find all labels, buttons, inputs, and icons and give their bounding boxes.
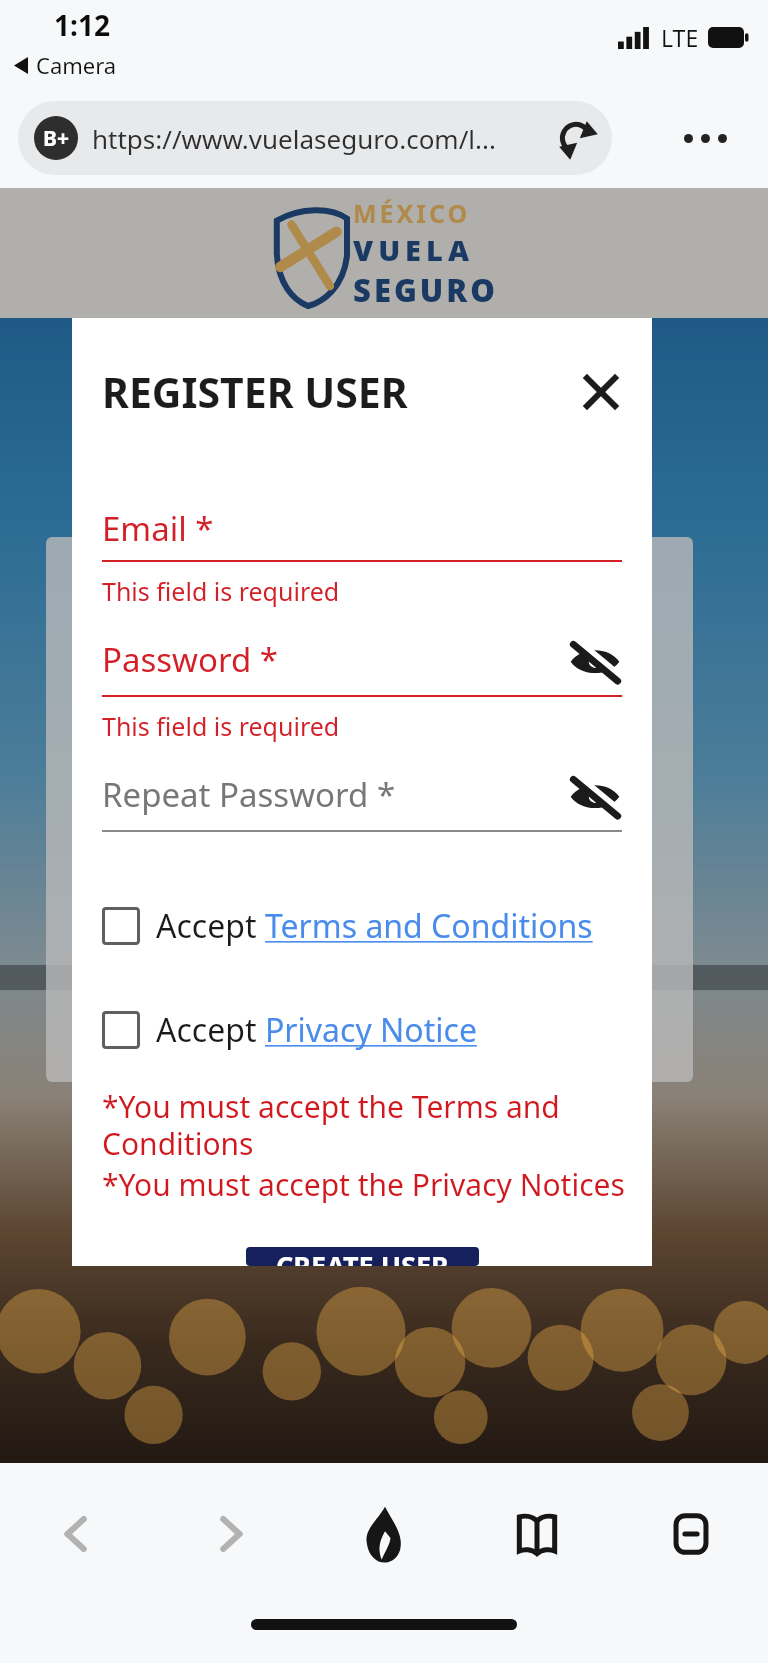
button[interactable]: Back — [43, 1500, 111, 1568]
staticText: 1:12 — [54, 6, 110, 44]
staticText: LTE — [661, 22, 699, 53]
button[interactable]: Email * — [102, 506, 622, 562]
staticText: REGISTER USER — [102, 364, 408, 420]
button[interactable]: Terms and Conditions — [265, 904, 593, 948]
button[interactable]: Tabs — [657, 1500, 725, 1568]
button[interactable]: Close — [576, 367, 626, 417]
button[interactable]: Repeat Password * — [102, 767, 622, 832]
staticText: Accept — [156, 904, 265, 948]
staticText: This field is required — [102, 574, 340, 608]
staticText: VUELA — [353, 230, 474, 269]
staticText: B+ — [43, 124, 69, 153]
staticText: Accept — [156, 1008, 265, 1052]
staticText: CREATE USER — [276, 1247, 449, 1266]
staticText: This field is required — [102, 709, 340, 743]
button[interactable]: More options — [674, 107, 736, 169]
button[interactable]: Brave Shields — [349, 1500, 417, 1568]
button[interactable]: Privacy Notice — [265, 1008, 477, 1052]
staticText: https://www.vuelaseguro.com/l... — [92, 121, 496, 156]
staticText: MÉXICO — [353, 196, 471, 230]
staticText: *You must accept the Terms and Condition… — [102, 1086, 560, 1164]
button[interactable]: Reload — [556, 118, 596, 158]
staticText: Email * — [102, 506, 214, 551]
button[interactable]: Show password — [568, 767, 622, 821]
button[interactable]: Password * — [102, 632, 622, 697]
button[interactable]: Forward — [196, 1500, 264, 1568]
button[interactable]: Bookmarks — [503, 1500, 571, 1568]
staticText: *You must accept the Privacy Notices — [102, 1164, 625, 1205]
staticText: Camera — [36, 50, 117, 80]
button[interactable]: Show password — [568, 632, 622, 686]
staticText: Password * — [102, 637, 279, 682]
button[interactable]: CREATE USER — [246, 1247, 479, 1266]
staticText: Repeat Password * — [102, 772, 396, 817]
button[interactable]: Accept — [102, 1008, 622, 1052]
button[interactable]: B+ — [18, 101, 612, 175]
button[interactable]: Accept — [102, 904, 622, 948]
staticText: SEGURO — [353, 269, 499, 311]
